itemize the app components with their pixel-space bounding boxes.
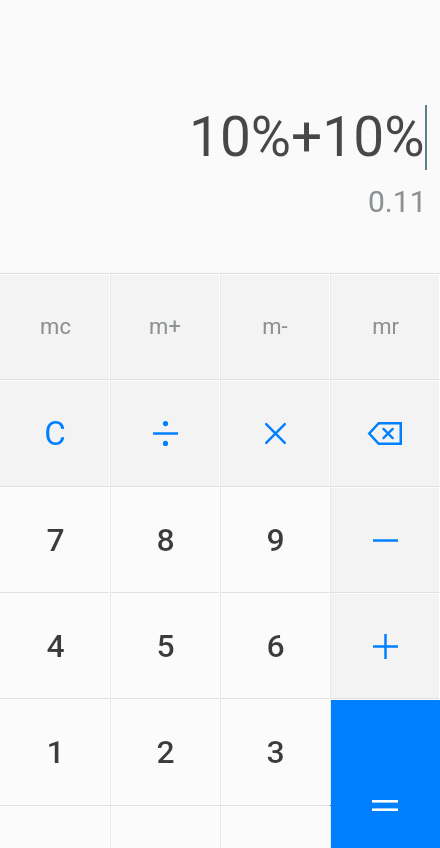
button[interactable]: 3 [220,699,330,805]
button[interactable]: Plus [330,593,440,699]
button[interactable]: m+ [110,274,220,380]
staticText: 10%+10% [189,105,425,169]
button[interactable]: 1 [0,699,110,805]
button[interactable]: mr [330,274,440,380]
staticText: 7 [46,521,65,559]
staticText: m- [262,314,288,340]
button[interactable]: 6 [220,593,330,699]
staticText: 6 [266,627,285,665]
button[interactable]: Minus [330,487,440,593]
staticText: mc [40,314,71,340]
button[interactable]: C [0,380,110,486]
button[interactable]: 8 [110,487,220,593]
button[interactable]: 5 [110,593,220,699]
staticText: 9 [266,521,285,559]
button[interactable]: 2 [110,699,220,805]
button[interactable]: m- [220,274,330,380]
button[interactable]: Multiply [220,380,330,486]
staticText: 1 [46,733,65,771]
staticText: 2 [156,733,175,771]
staticText: mr [372,314,399,340]
staticText: 0.11 [368,184,427,219]
staticText: C [44,414,66,453]
button[interactable]: mc [0,274,110,380]
button[interactable]: Equals [330,699,440,848]
button[interactable]: 7 [0,487,110,593]
button[interactable]: Backspace [330,380,440,486]
staticText: 3 [266,733,285,771]
button[interactable]: Divide [110,380,220,486]
staticText: 5 [156,627,175,665]
button[interactable]: 9 [220,487,330,593]
staticText: 8 [156,521,175,559]
staticText: m+ [149,314,181,340]
staticText: 4 [46,627,65,665]
button[interactable]: 4 [0,593,110,699]
